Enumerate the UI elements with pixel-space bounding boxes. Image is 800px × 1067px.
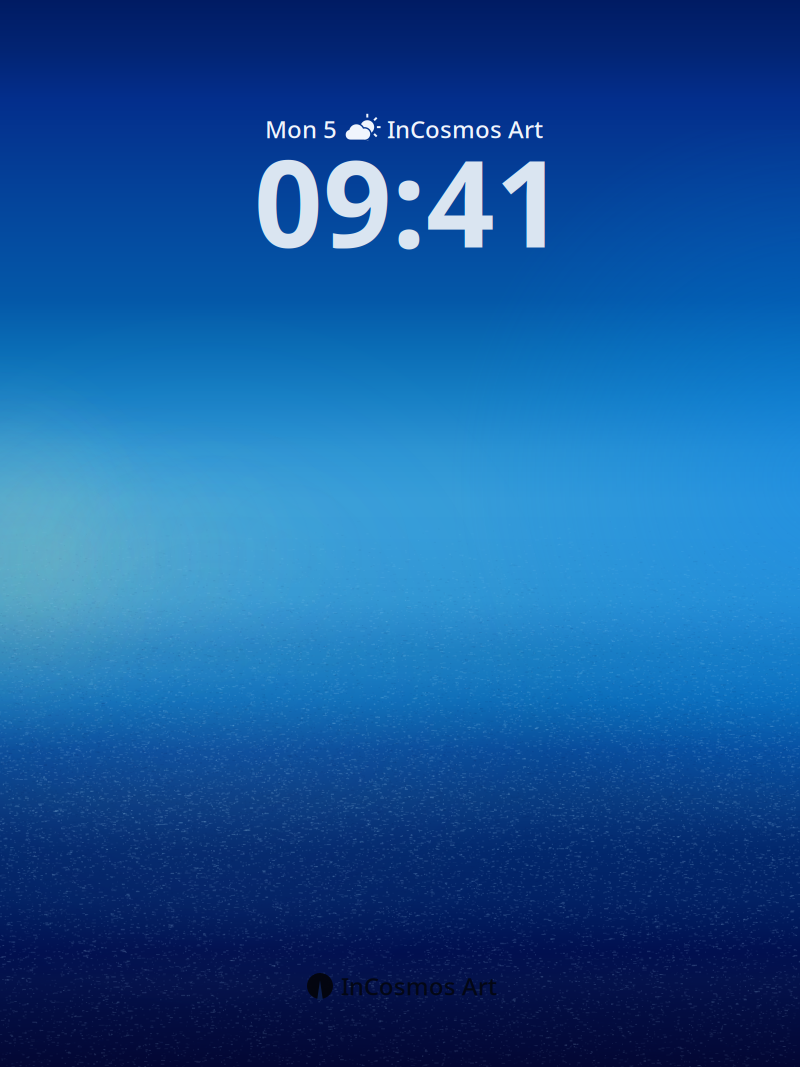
staticText: 09:41 [254,121,564,281]
staticText: InCosmos Art [387,113,543,145]
staticText: Mon 5 [265,113,337,145]
staticText: InCosmos Art [341,970,497,1002]
